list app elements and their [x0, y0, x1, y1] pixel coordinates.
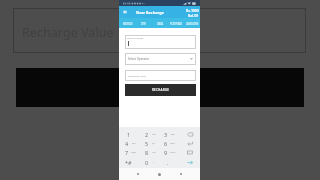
- staticText: MNO: [170, 142, 175, 145]
- staticText: Bal.00: [188, 13, 199, 18]
- staticText: 2: [145, 131, 149, 138]
- staticText: PQRS: [131, 151, 137, 154]
- staticText: New Recharge: [136, 10, 164, 15]
- staticText: +: [153, 161, 155, 164]
- button[interactable]: 0: [139, 158, 158, 167]
- button[interactable]: *#: [119, 158, 138, 167]
- staticText: Mobile Number: [127, 37, 144, 40]
- staticText: Recharge Value: [22, 24, 114, 41]
- staticText: 8: [145, 149, 149, 156]
- button[interactable]: 7: [119, 148, 138, 157]
- staticText: 3: [164, 131, 168, 138]
- button[interactable]: DTH: [136, 18, 152, 28]
- staticText: Select Operator: [128, 57, 150, 61]
- button[interactable]: 6: [158, 139, 177, 148]
- staticText: ABC: [152, 133, 156, 136]
- button[interactable]: .: [158, 158, 177, 167]
- staticText: RECHARGE: [152, 88, 170, 92]
- staticText: MOBILE: [123, 22, 133, 25]
- staticText: GHI: [132, 142, 136, 145]
- staticText: 1: [127, 131, 131, 138]
- button[interactable]: 5: [139, 139, 158, 148]
- staticText: WXYZ: [170, 151, 176, 154]
- staticText: JKL: [152, 142, 155, 145]
- button[interactable]: RECHARGE: [125, 84, 196, 96]
- button[interactable]: 3: [158, 130, 177, 139]
- staticText: Rs.1000: [186, 8, 199, 13]
- staticText: 0: [145, 159, 149, 166]
- staticText: 9: [164, 149, 168, 156]
- button[interactable]: Select Operator: [125, 53, 196, 65]
- staticText: DTH: [141, 22, 147, 25]
- button[interactable]: Home: [158, 173, 161, 176]
- staticText: 5: [145, 140, 149, 147]
- button[interactable]: 9: [158, 148, 177, 157]
- button[interactable]: MOBILE: [119, 18, 136, 28]
- button[interactable]: 4: [119, 139, 138, 148]
- button[interactable]: POSTPAID: [168, 18, 184, 28]
- staticText: POSTPAID: [170, 22, 183, 25]
- button[interactable]: Recharge Value: [125, 70, 196, 81]
- button[interactable]: Enter: [180, 139, 199, 148]
- button[interactable]: 2: [139, 130, 158, 139]
- button[interactable]: Switch keyboard: [180, 148, 199, 157]
- button[interactable]: Go: [180, 158, 199, 167]
- staticText: 6: [164, 140, 168, 147]
- staticText: LANDLINE: [186, 22, 199, 25]
- button[interactable]: DATA: [152, 18, 168, 28]
- staticText: Recharge Value: [128, 74, 147, 77]
- staticText: DEF: [171, 133, 175, 136]
- staticText: .: [167, 159, 169, 166]
- staticText: DATA: [157, 22, 164, 25]
- button[interactable]: 1: [119, 130, 138, 139]
- button[interactable]: 8: [139, 148, 158, 157]
- staticText: TUV: [152, 151, 156, 154]
- button[interactable]: LANDLINE: [184, 18, 200, 28]
- staticText: 7: [125, 149, 129, 156]
- button[interactable]: Open navigation menu: [123, 10, 127, 14]
- button[interactable]: Mobile Number: [125, 35, 196, 49]
- button[interactable]: Backspace: [180, 130, 199, 139]
- staticText: *#: [125, 159, 132, 166]
- staticText: 4: [125, 140, 129, 147]
